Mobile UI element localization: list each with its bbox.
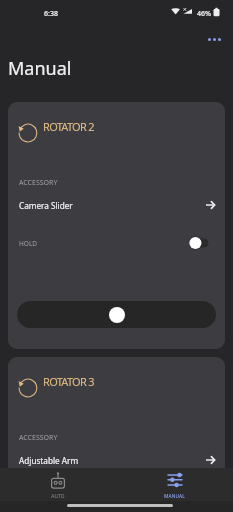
staticText: AUTO	[51, 493, 65, 500]
staticText: Camera Slider	[19, 200, 73, 211]
button[interactable]: Hold toggle	[189, 236, 209, 250]
staticText: Manual	[8, 56, 72, 81]
button[interactable]: Camera Slider	[8, 197, 225, 213]
staticText: ROTATOR 2	[43, 119, 94, 134]
staticText: MANUAL	[164, 493, 185, 500]
button[interactable]: AUTO	[0, 468, 116, 501]
other: Open	[206, 201, 215, 209]
other: Open	[206, 456, 215, 464]
staticText: ACCESSORY	[19, 178, 58, 188]
staticText: 46%	[197, 9, 211, 19]
staticText: ROTATOR 3	[43, 374, 94, 389]
button[interactable]: More options	[204, 30, 225, 49]
staticText: HOLD	[19, 239, 38, 248]
button[interactable]: Adjustable Arm	[8, 452, 225, 468]
button[interactable]: Rotation slider	[17, 301, 216, 328]
staticText: ACCESSORY	[19, 433, 58, 443]
staticText: Adjustable Arm	[19, 455, 79, 466]
button[interactable]: MANUAL	[116, 468, 233, 501]
staticText: 6:38	[44, 9, 58, 19]
